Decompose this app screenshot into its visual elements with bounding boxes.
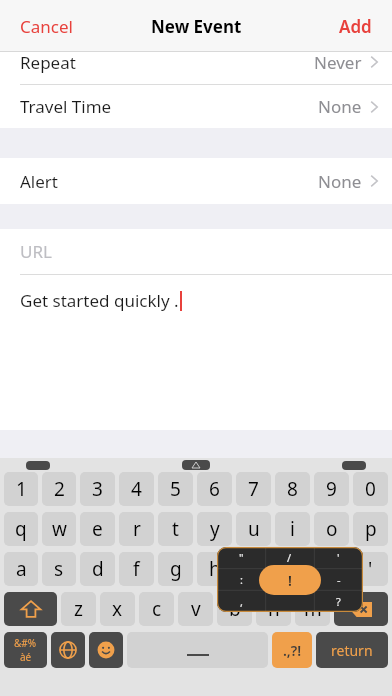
staticText: x xyxy=(112,596,123,622)
button[interactable]: x xyxy=(100,592,135,626)
staticText: w xyxy=(52,516,67,542)
staticText: n xyxy=(268,596,280,622)
button[interactable]: 4 xyxy=(119,472,154,506)
staticText: - xyxy=(337,572,341,587)
button[interactable]: Travel Time xyxy=(0,85,392,128)
staticText: b xyxy=(229,596,241,622)
staticText: 5 xyxy=(170,476,181,502)
staticText: Repeat xyxy=(20,51,76,74)
button[interactable]: p xyxy=(353,512,388,546)
button[interactable]: s xyxy=(42,552,76,586)
button[interactable]: Alert xyxy=(0,158,392,204)
button[interactable]: a xyxy=(4,552,38,586)
button[interactable]: m xyxy=(295,592,330,626)
button[interactable]: URL xyxy=(0,229,392,274)
button[interactable]: w xyxy=(42,512,76,546)
staticText: r xyxy=(133,516,141,542)
button[interactable]: Change keyboard xyxy=(51,632,85,668)
button[interactable]: r xyxy=(119,512,154,546)
staticText: p xyxy=(365,516,377,542)
button[interactable]: return xyxy=(316,632,388,668)
staticText: 6 xyxy=(209,476,220,502)
button[interactable]: 0 xyxy=(353,472,388,506)
button[interactable]: o xyxy=(314,512,349,546)
button[interactable]: Add xyxy=(329,9,382,44)
staticText: 0 xyxy=(365,476,376,502)
staticText: 7 xyxy=(248,476,259,502)
button[interactable]: 5 xyxy=(158,472,193,506)
button[interactable]: k xyxy=(275,552,310,586)
staticText: Cancel xyxy=(20,15,73,38)
staticText: Get started quickly . xyxy=(20,289,179,312)
staticText: u xyxy=(248,516,260,542)
button[interactable]: " xyxy=(217,547,363,612)
button[interactable]: f xyxy=(119,552,154,586)
staticText: 9 xyxy=(326,476,337,502)
button[interactable]: 2 xyxy=(42,472,76,506)
button[interactable]: 7 xyxy=(236,472,271,506)
staticText: 4 xyxy=(131,476,142,502)
button[interactable]: Right handle xyxy=(342,461,366,470)
button[interactable]: Space xyxy=(127,632,268,668)
staticText: o xyxy=(326,516,338,542)
button[interactable]: t xyxy=(158,512,193,546)
staticText: URL xyxy=(20,240,52,263)
staticText: ' xyxy=(368,556,373,582)
staticText: &#% xyxy=(14,636,37,650)
button[interactable]: g xyxy=(158,552,193,586)
button[interactable]: Get started quickly . xyxy=(0,275,392,430)
button[interactable]: .,?! xyxy=(272,632,312,668)
button[interactable]: Expand xyxy=(182,460,210,470)
button[interactable]: 9 xyxy=(314,472,349,506)
button[interactable]: e xyxy=(80,512,115,546)
staticText: q xyxy=(15,516,27,542)
button[interactable]: Repeat xyxy=(0,40,392,84)
button[interactable]: Shift xyxy=(4,592,57,626)
button[interactable]: 1 xyxy=(4,472,38,506)
button[interactable]: v xyxy=(178,592,213,626)
button[interactable]: b xyxy=(217,592,252,626)
staticText: h xyxy=(209,556,221,582)
staticText: Never xyxy=(314,51,362,74)
button[interactable]: ' xyxy=(353,552,388,586)
button[interactable]: y xyxy=(197,512,232,546)
staticText: " xyxy=(239,550,244,565)
staticText: None xyxy=(318,170,362,193)
staticText: s xyxy=(54,556,64,582)
button[interactable]: z xyxy=(61,592,96,626)
button[interactable]: 6 xyxy=(197,472,232,506)
button[interactable]: 3 xyxy=(80,472,115,506)
staticText: return xyxy=(331,641,373,660)
staticText: y xyxy=(210,516,220,542)
button[interactable]: u xyxy=(236,512,271,546)
button[interactable]: h xyxy=(197,552,232,586)
staticText: 1 xyxy=(16,476,27,502)
staticText: , xyxy=(240,594,243,609)
button[interactable]: d xyxy=(80,552,115,586)
button[interactable]: Emoji xyxy=(89,632,123,668)
button[interactable]: n xyxy=(256,592,291,626)
button[interactable]: &#% xyxy=(4,632,47,668)
staticText: ! xyxy=(288,571,292,590)
button[interactable]: Backspace xyxy=(334,592,388,626)
staticText: 8 xyxy=(287,476,298,502)
staticText: Add xyxy=(339,15,372,38)
staticText: ? xyxy=(336,594,341,609)
staticText: New Event xyxy=(151,15,242,38)
button[interactable]: 8 xyxy=(275,472,310,506)
button[interactable]: j xyxy=(236,552,271,586)
staticText: t xyxy=(172,516,179,542)
staticText: : xyxy=(240,572,243,587)
button[interactable]: l xyxy=(314,552,349,586)
staticText: v xyxy=(191,596,201,622)
staticText: 2 xyxy=(54,476,65,502)
button[interactable]: q xyxy=(4,512,38,546)
button[interactable]: Left handle xyxy=(26,461,50,470)
staticText: / xyxy=(287,550,292,565)
staticText: .,?! xyxy=(283,641,302,660)
button[interactable]: i xyxy=(275,512,310,546)
button[interactable]: c xyxy=(139,592,174,626)
button[interactable]: Cancel xyxy=(10,9,83,44)
